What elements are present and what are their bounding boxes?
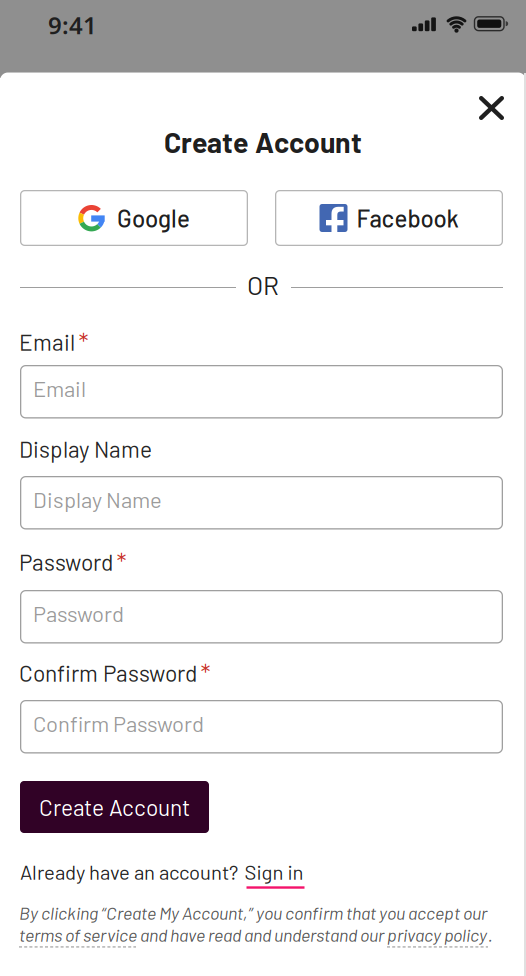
button[interactable]: terms of service bbox=[19, 924, 137, 947]
staticText: * bbox=[78, 326, 88, 357]
button[interactable]: Close bbox=[475, 92, 507, 123]
staticText: Email bbox=[19, 328, 75, 355]
staticText: Create Account bbox=[164, 124, 362, 159]
staticText: Already have an account? bbox=[20, 859, 238, 884]
staticText: . bbox=[488, 924, 493, 945]
button[interactable]: privacy policy bbox=[387, 924, 488, 947]
staticText: * bbox=[200, 657, 210, 688]
staticText: Confirm Password bbox=[33, 710, 204, 736]
staticText: Sign in bbox=[244, 859, 303, 884]
staticText: Email bbox=[33, 375, 86, 401]
staticText: terms of service bbox=[19, 924, 137, 945]
staticText: 9:41 bbox=[48, 9, 97, 41]
staticText: OR bbox=[247, 269, 279, 300]
staticText: Password bbox=[33, 600, 124, 626]
staticText: Confirm Password bbox=[19, 659, 197, 686]
staticText: Display Name bbox=[33, 486, 162, 512]
button[interactable]: Google bbox=[20, 190, 248, 246]
staticText: * bbox=[116, 546, 126, 577]
button[interactable]: Sign in bbox=[244, 859, 303, 889]
staticText: Facebook bbox=[356, 204, 458, 232]
staticText: Create Account bbox=[39, 793, 190, 821]
staticText: privacy policy bbox=[387, 924, 487, 945]
button[interactable]: Create Account bbox=[20, 781, 209, 833]
staticText: and have read and understand our bbox=[137, 924, 387, 945]
staticText: Google bbox=[117, 204, 190, 232]
staticText: Password bbox=[19, 548, 113, 575]
button[interactable]: Facebook bbox=[275, 190, 503, 246]
staticText: Display Name bbox=[19, 435, 152, 462]
staticText: By clicking “Create My Account,” you con… bbox=[19, 902, 487, 923]
